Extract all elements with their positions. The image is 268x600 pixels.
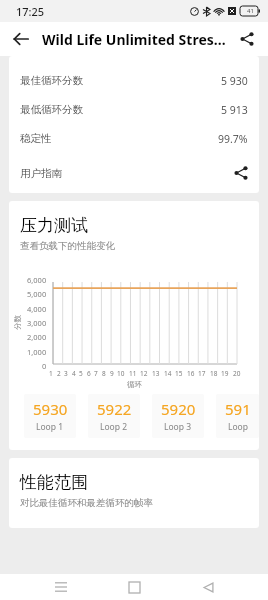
staticText: 19 <box>221 369 229 378</box>
staticText: 3 <box>64 369 68 378</box>
staticText: 2 <box>57 369 61 378</box>
staticText: 41 <box>247 7 254 15</box>
staticText: 3,000 <box>27 318 47 328</box>
staticText: 5,000 <box>27 289 47 299</box>
button[interactable]: Back <box>195 574 221 600</box>
staticText: 分数 <box>13 315 22 330</box>
staticText: 99.7% <box>218 132 248 146</box>
staticText: 5 930 <box>221 74 248 88</box>
staticText: 最低循环分数 <box>20 103 83 116</box>
staticText: 11 <box>129 369 137 378</box>
button[interactable]: Recent apps <box>48 574 74 600</box>
staticText: 591 <box>225 399 251 419</box>
staticText: 6 <box>87 369 91 378</box>
button[interactable]: 5922 <box>88 394 140 438</box>
button[interactable]: Home <box>121 574 147 600</box>
staticText: 稳定性 <box>20 132 52 145</box>
staticText: 18 <box>210 369 218 378</box>
staticText: 5922 <box>97 399 132 419</box>
staticText: 8 <box>102 369 106 378</box>
staticText: 0 <box>42 361 47 371</box>
staticText: 用户指南 <box>20 167 62 180</box>
staticText: Loop <box>228 421 248 433</box>
staticText: 4 <box>72 369 76 378</box>
staticText: 5930 <box>33 399 68 419</box>
staticText: 5920 <box>161 399 196 419</box>
staticText: 1 <box>49 369 53 378</box>
button[interactable]: 591 <box>216 394 259 438</box>
button[interactable]: Share <box>232 24 262 54</box>
staticText: 性能范围 <box>20 472 88 493</box>
staticText: 5 913 <box>221 103 248 117</box>
staticText: Loop 2 <box>100 421 128 433</box>
button[interactable]: 5920 <box>152 394 204 438</box>
staticText: 2,000 <box>27 332 47 342</box>
staticText: 9 <box>110 369 114 378</box>
staticText: 7 <box>94 369 98 378</box>
button[interactable]: Back <box>6 24 36 54</box>
staticText: 4,000 <box>27 304 47 314</box>
staticText: 最佳循环分数 <box>20 74 83 87</box>
staticText: 查看负载下的性能变化 <box>20 240 115 252</box>
staticText: 14 <box>164 369 172 378</box>
staticText: Loop 3 <box>164 421 192 433</box>
staticText: 6,000 <box>27 275 47 285</box>
staticText: 12 <box>140 369 148 378</box>
staticText: 对比最佳循环和最差循环的帧率 <box>20 497 153 509</box>
staticText: Loop 1 <box>36 421 64 433</box>
staticText: 16 <box>187 369 195 378</box>
staticText: 1,000 <box>27 347 47 357</box>
staticText: 17 <box>198 369 206 378</box>
staticText: Wild Life Unlimited Stres… <box>42 30 226 49</box>
staticText: 压力测试 <box>20 215 88 236</box>
button[interactable]: 5930 <box>24 394 76 438</box>
staticText: 17:25 <box>16 4 45 19</box>
staticText: 13 <box>152 369 160 378</box>
staticText: 循环 <box>127 380 142 389</box>
staticText: 20 <box>233 369 241 378</box>
button[interactable]: 用户指南 <box>20 157 248 189</box>
staticText: 5 <box>79 369 83 378</box>
staticText: 15 <box>175 369 183 378</box>
staticText: 10 <box>117 369 125 378</box>
